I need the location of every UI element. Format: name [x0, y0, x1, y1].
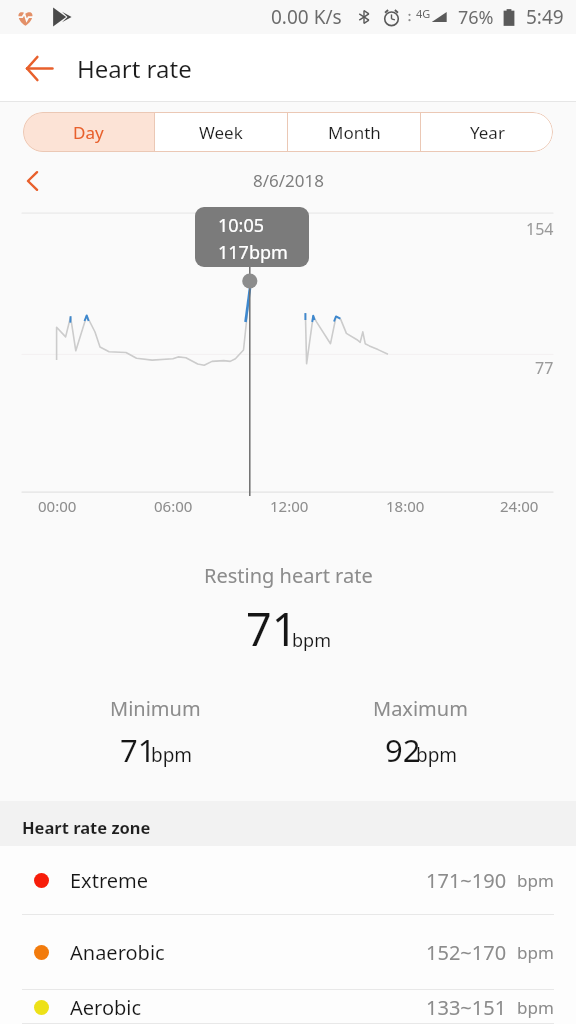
staticText: 117bpm [218, 240, 288, 265]
staticText: 10:05 [218, 213, 265, 238]
staticText: 5:49 [526, 4, 564, 30]
staticText: bpm [292, 628, 331, 653]
button[interactable]: Extreme [0, 846, 576, 915]
staticText: Resting heart rate [204, 562, 373, 589]
button[interactable]: Back [18, 47, 60, 89]
staticText: bpm [517, 996, 554, 1019]
staticText: 77 [535, 357, 554, 379]
staticText: Heart rate zone [22, 816, 151, 838]
staticText: Minimum [110, 695, 201, 722]
staticText: 171~190 [426, 867, 507, 894]
button[interactable]: Year [421, 112, 553, 152]
staticText: Extreme [70, 867, 149, 894]
staticText: Day [73, 121, 104, 144]
staticText: 152~170 [426, 939, 507, 966]
staticText: 71 [120, 729, 156, 771]
staticText: Year [470, 121, 505, 144]
staticText: 71 [246, 598, 298, 659]
button[interactable]: Day [23, 112, 154, 152]
staticText: bpm [151, 742, 193, 768]
staticText: bpm [517, 869, 554, 892]
staticText: 0.00 K/s [271, 4, 342, 30]
staticText: 8/6/2018 [253, 169, 324, 192]
staticText: 18:00 [386, 496, 425, 516]
staticText: 92 [385, 729, 421, 771]
staticText: Aerobic [70, 994, 142, 1021]
button[interactable]: Aerobic [0, 990, 576, 1024]
staticText: Maximum [373, 695, 468, 722]
staticText: 06:00 [154, 496, 193, 516]
staticText: bpm [416, 742, 458, 768]
button[interactable]: Week [155, 112, 287, 152]
button[interactable]: Anaerobic [0, 915, 576, 990]
staticText: Month [328, 121, 381, 144]
staticText: 24:00 [500, 496, 539, 516]
staticText: Anaerobic [70, 939, 165, 966]
staticText: Week [199, 121, 243, 144]
staticText: bpm [517, 941, 554, 964]
button[interactable]: Previous day [14, 163, 50, 199]
staticText: Heart rate [77, 52, 192, 85]
staticText: 12:00 [270, 496, 309, 516]
staticText: 4G [416, 6, 431, 21]
staticText: 00:00 [38, 496, 77, 516]
staticText: 154 [526, 218, 554, 240]
button[interactable]: Month [288, 112, 420, 152]
staticText: 133~151 [426, 994, 507, 1021]
staticText: 76% [458, 5, 494, 30]
